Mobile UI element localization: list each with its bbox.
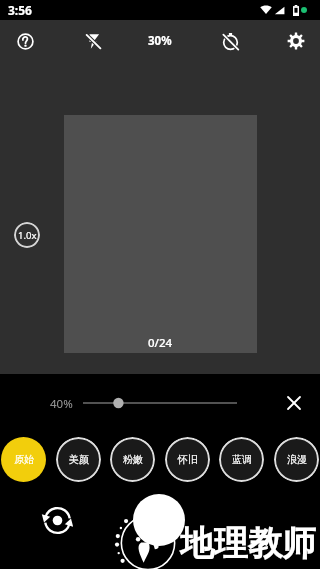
button[interactable]: 原始 (1, 437, 46, 482)
staticText: 原始 (14, 453, 34, 466)
button[interactable] (80, 391, 240, 415)
staticText: 粉嫩 (123, 453, 143, 466)
button[interactable]: Switch camera (40, 503, 75, 538)
button[interactable]: Shutter (133, 494, 185, 546)
button[interactable]: 粉嫩 (110, 437, 155, 482)
staticText: 地理教师 (180, 522, 316, 565)
staticText: 怀旧 (178, 453, 198, 466)
staticText: 美颜 (69, 453, 89, 466)
button[interactable]: Flash off (76, 25, 112, 57)
button[interactable]: Close (277, 386, 311, 420)
staticText: 3:56 (8, 2, 32, 18)
staticText: 蓝调 (232, 453, 252, 466)
button[interactable]: Settings (278, 25, 314, 57)
staticText: 30% (148, 33, 172, 49)
button[interactable]: 蓝调 (219, 437, 264, 482)
button[interactable]: 怀旧 (165, 437, 210, 482)
button[interactable]: 美颜 (56, 437, 101, 482)
staticText: 0/24 (148, 335, 173, 351)
button[interactable]: 1.0x (14, 222, 40, 248)
button[interactable]: 30% (138, 25, 182, 57)
staticText: 浪漫 (287, 453, 307, 466)
button[interactable]: Help (7, 25, 43, 57)
staticText: 1.0x (18, 229, 37, 242)
button[interactable]: Timer off (212, 25, 248, 57)
button[interactable]: 浪漫 (274, 437, 319, 482)
staticText: 40% (50, 396, 73, 412)
